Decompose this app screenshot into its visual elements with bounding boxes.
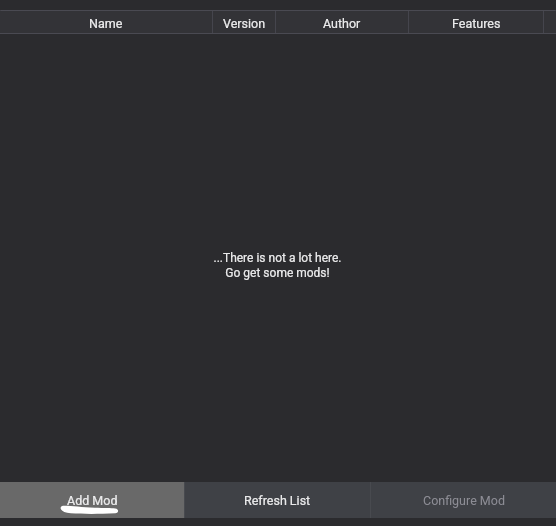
button[interactable]: Refresh List [185, 482, 370, 518]
staticText: Features [452, 16, 501, 31]
staticText: Configure Mod [423, 493, 505, 508]
staticText: Author [323, 16, 361, 31]
button[interactable]: Author [276, 11, 408, 33]
button[interactable]: Version [213, 11, 275, 33]
button[interactable]: Add Mod [0, 482, 184, 518]
button[interactable]: Features [409, 11, 543, 33]
staticText: Go get some mods! [225, 266, 330, 280]
staticText: ...There is not a lot here. [213, 251, 342, 265]
button[interactable]: Name [0, 11, 212, 33]
button[interactable]: Configure Mod [371, 482, 556, 518]
staticText: Name [89, 16, 123, 31]
staticText: Add Mod [67, 493, 118, 508]
other: Selected [0, 482, 184, 518]
staticText: Version [223, 16, 266, 31]
staticText: Refresh List [244, 493, 311, 508]
